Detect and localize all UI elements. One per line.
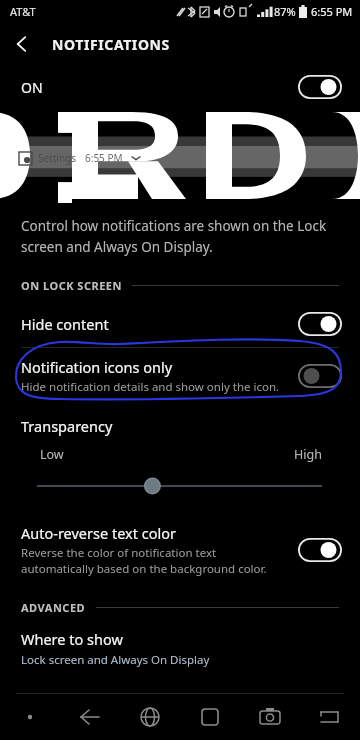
button[interactable]: Recents indicator [0, 694, 60, 740]
button[interactable]: Home [180, 694, 240, 740]
button[interactable]: Auto-reverse text color [0, 515, 360, 584]
button[interactable]: Off [298, 364, 342, 388]
staticText: High [294, 446, 322, 463]
staticText: 6:55 PM [85, 151, 123, 165]
button[interactable]: Hide content [0, 301, 360, 347]
staticText: Notification icons only [21, 357, 173, 377]
staticText: ON LOCK SCREEN [21, 278, 122, 293]
staticText: AT&T [10, 4, 36, 19]
button[interactable]: On [298, 312, 342, 336]
button[interactable]: Where to show [0, 621, 360, 678]
staticText: NOTIFICATIONS [52, 35, 170, 54]
staticText: Hide content [21, 314, 109, 334]
staticText: Transparency [21, 416, 113, 436]
button[interactable]: Browser [120, 694, 180, 740]
staticText: Auto-reverse text color [21, 523, 176, 543]
button[interactable]: Camera [240, 694, 300, 740]
staticText: ADVANCED [21, 600, 86, 615]
staticText: ON [21, 78, 43, 97]
staticText: Lock screen and Always On Display [21, 652, 210, 668]
staticText: Control how notifications are shown on t… [21, 217, 334, 256]
button[interactable]: On [298, 538, 342, 562]
staticText: Low [40, 446, 64, 463]
button[interactable]: Back [60, 694, 120, 740]
staticText: 6:55 PM [311, 4, 353, 19]
staticText: 87% [274, 4, 296, 19]
staticText: Hide notification details and show only … [21, 379, 280, 395]
button[interactable]: Transparency slider [0, 475, 360, 497]
button[interactable]: Notification icons only [0, 348, 360, 404]
button[interactable]: ON [0, 66, 360, 108]
staticText: Settings [38, 151, 77, 165]
button[interactable]: Switch [300, 694, 360, 740]
button[interactable]: On [298, 75, 342, 99]
button[interactable]: Back [0, 22, 44, 66]
staticText: Where to show [21, 629, 123, 649]
staticText: Reverse the color of notification text a… [21, 545, 286, 576]
